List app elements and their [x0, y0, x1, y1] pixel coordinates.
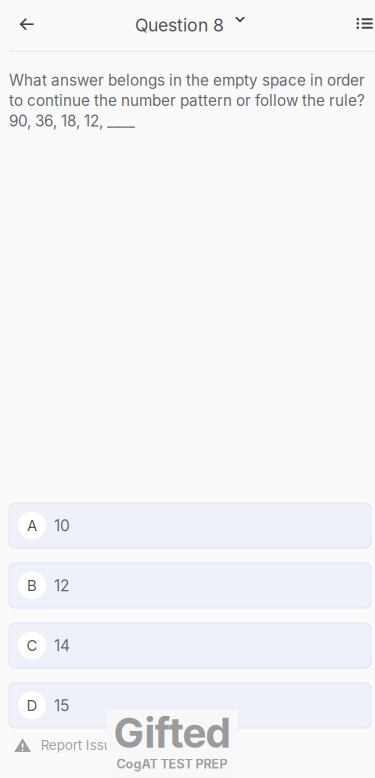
staticText: 14: [54, 636, 70, 655]
button[interactable]: C: [9, 623, 371, 668]
staticText: C: [26, 636, 37, 655]
button[interactable]: D: [9, 683, 371, 728]
button[interactable]: Question 8: [135, 1, 245, 49]
staticText: What answer belongs in the empty space i…: [9, 71, 365, 130]
staticText: 12: [54, 576, 69, 595]
staticText: A: [27, 516, 37, 535]
staticText: B: [27, 576, 37, 595]
button[interactable]: Report Issue: [14, 733, 194, 757]
staticText: 15: [54, 696, 69, 715]
staticText: CogAT TEST PREP: [116, 756, 227, 772]
staticText: Report Issue: [41, 737, 120, 753]
staticText: Gifted: [114, 708, 230, 758]
staticText: Question 8: [135, 14, 224, 36]
button[interactable]: Back: [3, 0, 51, 48]
button[interactable]: B: [9, 563, 371, 608]
button[interactable]: Question list: [343, 0, 375, 46]
staticText: 10: [54, 516, 70, 535]
button[interactable]: A: [9, 503, 371, 548]
staticText: D: [26, 696, 37, 715]
